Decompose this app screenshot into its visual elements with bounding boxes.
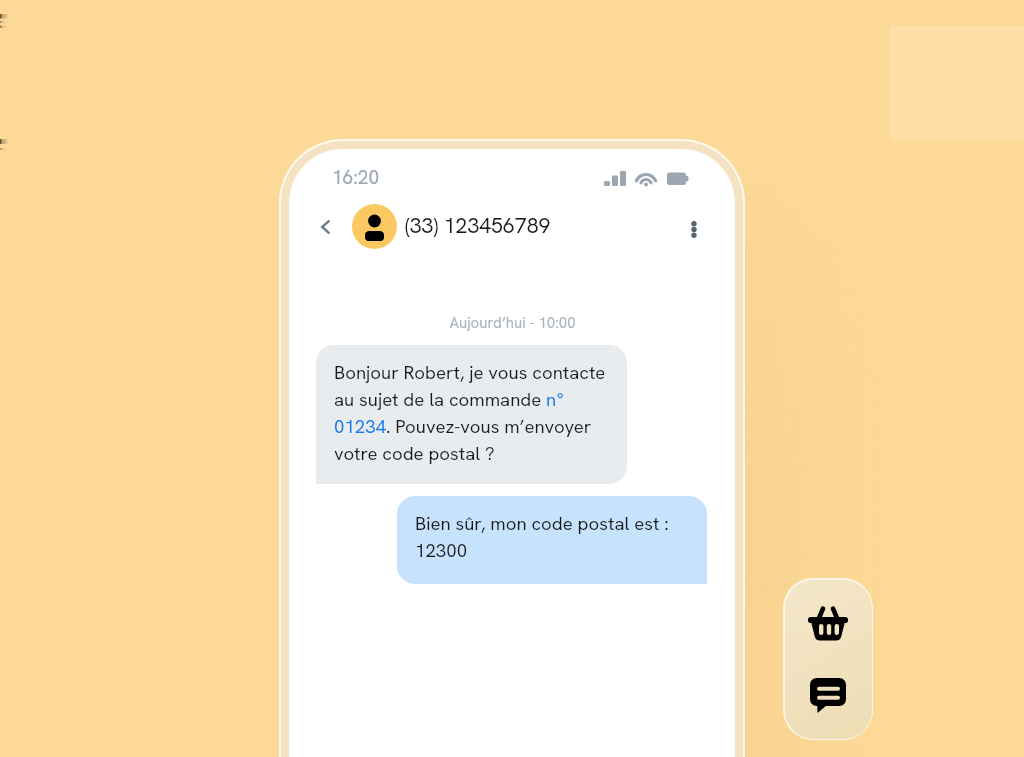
staticText: Bien sûr, mon code postal est : 12300 (415, 511, 697, 562)
staticText: 16:20 (332, 165, 380, 190)
staticText: Aujourd’hui - 10:00 (449, 313, 576, 333)
button[interactable]: Bien sûr, mon code postal est : 12300 (397, 496, 707, 584)
button[interactable]: More options (677, 212, 711, 246)
button[interactable]: Messages (804, 672, 852, 719)
button[interactable]: Back (309, 211, 341, 243)
button[interactable]: Basket (804, 600, 852, 647)
staticText: Bonjour Robert, je vous contacte au suje… (334, 360, 616, 465)
button[interactable]: Bonjour Robert, je vous contacte au suje… (316, 345, 627, 484)
button[interactable]: Contact avatar (352, 204, 397, 249)
staticText: (33) 123456789 (405, 212, 551, 240)
